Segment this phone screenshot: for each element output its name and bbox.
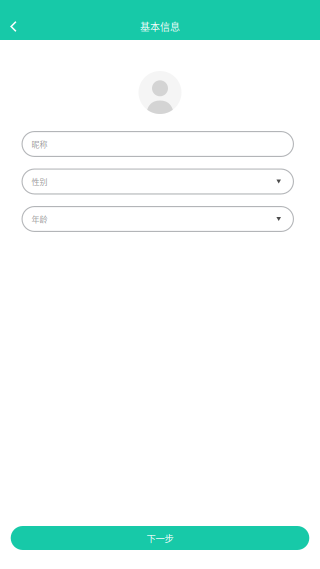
staticText: 年龄 [31,213,47,225]
button[interactable]: 下一步 [11,526,309,550]
button[interactable]: 性别 [21,168,294,194]
button[interactable]: Choose profile photo [138,71,181,114]
staticText: 性别 [31,176,47,187]
staticText: 昵称 [31,138,47,150]
button[interactable]: 昵称 [21,131,294,157]
button[interactable]: 年龄 [21,206,294,232]
button[interactable]: Back [0,13,27,40]
staticText: 下一步 [146,531,173,545]
staticText: 基本信息 [140,19,180,34]
